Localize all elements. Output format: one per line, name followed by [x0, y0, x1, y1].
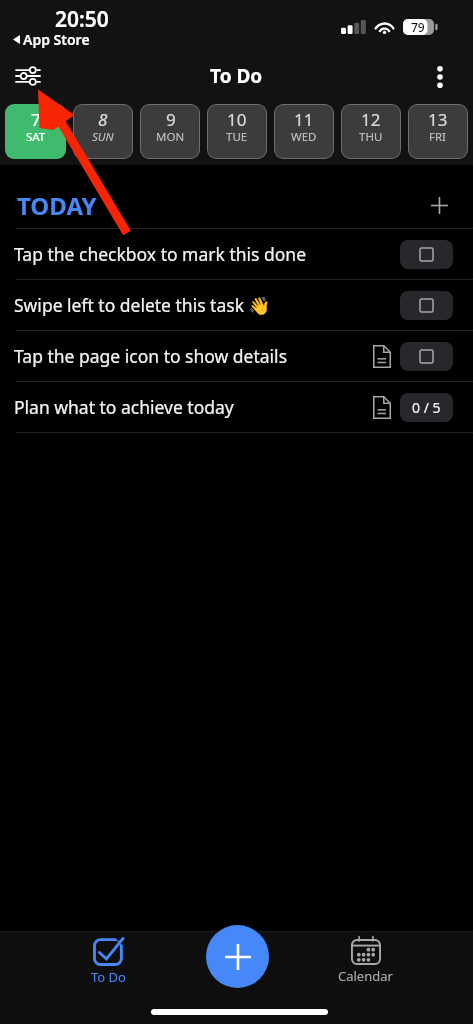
staticText: TODAY	[17, 189, 97, 220]
staticText: SAT	[26, 129, 46, 145]
staticText: 7	[31, 108, 41, 131]
staticText: TUE	[226, 129, 248, 145]
button[interactable]: Mark done	[400, 240, 453, 269]
staticText: Plan what to achieve today	[14, 395, 367, 419]
button[interactable]: Tap the checkbox to mark this done	[0, 228, 473, 279]
staticText: App Store	[23, 30, 90, 49]
staticText: 9	[166, 108, 176, 131]
button[interactable]: Progress	[400, 393, 453, 422]
staticText: To Do	[210, 63, 263, 89]
button[interactable]: Swipe left to delete this task 👋	[0, 279, 473, 330]
staticText: Tap the page icon to show details	[14, 344, 367, 368]
staticText: Tap the checkbox to mark this done	[14, 242, 400, 266]
staticText: To Do	[91, 968, 126, 986]
button[interactable]: To Do	[68, 936, 148, 990]
button[interactable]: Show details	[367, 341, 397, 371]
button[interactable]: Show details	[367, 392, 397, 422]
button[interactable]: Plan what to achieve today	[0, 381, 473, 432]
button[interactable]: Add task	[422, 190, 456, 221]
button[interactable]: 13	[408, 104, 468, 159]
staticText: WED	[291, 129, 317, 145]
staticText: SUN	[92, 129, 114, 145]
staticText: 79	[411, 19, 425, 35]
button[interactable]: 10	[207, 104, 267, 159]
staticText: Swipe left to delete this task 👋	[14, 293, 400, 317]
staticText: 11	[294, 108, 314, 131]
button[interactable]: 9	[140, 104, 200, 159]
button[interactable]: 8	[73, 104, 133, 159]
button[interactable]: More options	[423, 60, 457, 94]
staticText: 0 / 5	[412, 398, 441, 417]
staticText: Calendar	[338, 967, 393, 985]
staticText: MON	[156, 129, 185, 145]
staticText: 13	[428, 108, 448, 131]
button[interactable]: 12	[341, 104, 401, 159]
staticText: 20:50	[55, 5, 109, 34]
button[interactable]: Tap the page icon to show details	[0, 330, 473, 381]
button[interactable]: Filter	[8, 56, 48, 96]
staticText: 8	[98, 108, 108, 131]
button[interactable]: Add	[206, 925, 269, 988]
staticText: THU	[359, 129, 383, 145]
button[interactable]: Mark done	[400, 291, 453, 320]
button[interactable]: Mark done	[400, 342, 453, 371]
button[interactable]: Calendar	[325, 936, 405, 990]
staticText: 10	[227, 108, 247, 131]
staticText: 12	[361, 108, 381, 131]
button[interactable]: 11	[274, 104, 334, 159]
button[interactable]: 7	[5, 104, 66, 159]
staticText: FRI	[429, 129, 447, 145]
